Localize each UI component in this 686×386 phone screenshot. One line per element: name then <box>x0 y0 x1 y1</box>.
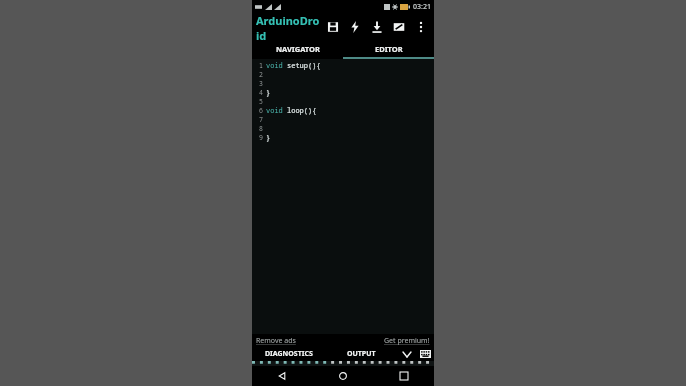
button[interactable]: EDITOR <box>343 41 434 57</box>
button[interactable]: More options <box>410 14 432 40</box>
staticText: OUTPUT <box>347 349 376 359</box>
button[interactable]: Upload <box>366 14 388 40</box>
staticText: 8 <box>259 124 263 133</box>
button[interactable]: Collapse <box>398 347 416 361</box>
staticText: 03:21 <box>413 2 431 12</box>
staticText: EDITOR <box>375 44 403 54</box>
button[interactable]: Recents <box>373 366 434 386</box>
staticText: void <box>266 61 287 70</box>
staticText: void <box>266 106 287 115</box>
staticText: ArduinoDroid <box>256 13 322 41</box>
staticText: 9 <box>259 133 263 142</box>
staticText: 5 <box>259 97 263 106</box>
button[interactable]: Home <box>312 366 373 386</box>
staticText: 1 <box>259 61 263 70</box>
button[interactable]: Save <box>322 14 344 40</box>
button[interactable]: Remove ads <box>256 336 296 346</box>
staticText: loop(){ <box>287 106 317 115</box>
button[interactable]: DIAGNOSTICS <box>252 347 325 361</box>
button[interactable]: OUTPUT <box>325 347 398 361</box>
staticText: Get premium! <box>384 336 430 346</box>
staticText: Remove ads <box>256 336 296 346</box>
staticText: 7 <box>259 115 263 124</box>
staticText: 2 <box>259 70 263 79</box>
button[interactable]: NAVIGATOR <box>252 41 343 57</box>
button[interactable]: Back <box>252 366 312 386</box>
button[interactable]: Get premium! <box>384 336 430 346</box>
staticText: 6 <box>259 106 263 115</box>
staticText: DIAGNOSTICS <box>265 349 313 359</box>
staticText: NAVIGATOR <box>276 44 320 54</box>
staticText: 3 <box>259 79 263 88</box>
staticText: 4 <box>259 88 263 97</box>
button[interactable]: Keyboard <box>416 347 434 361</box>
button[interactable]: Compile <box>344 14 366 40</box>
staticText: setup(){ <box>287 61 321 70</box>
button[interactable]: Serial monitor <box>388 14 410 40</box>
staticText: } <box>266 133 271 142</box>
staticText: } <box>266 88 271 97</box>
